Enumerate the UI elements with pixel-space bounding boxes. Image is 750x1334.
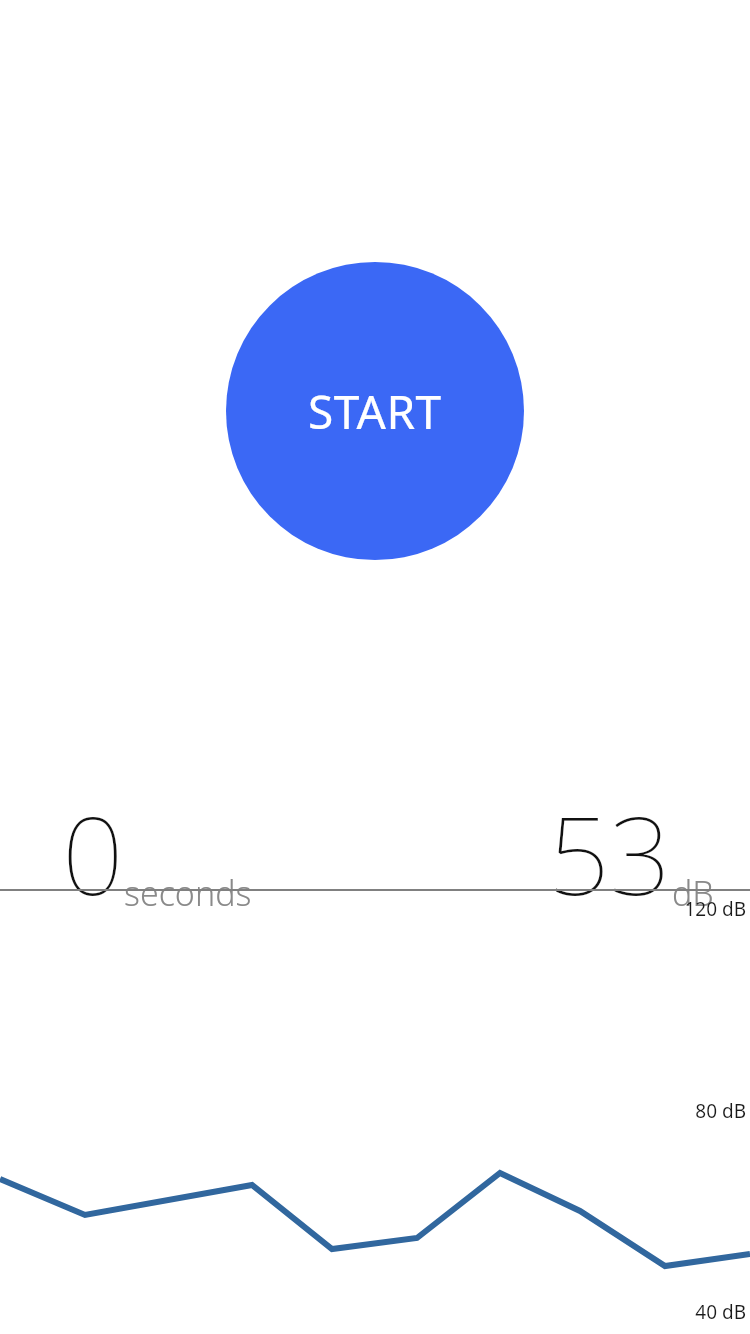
staticText: START [308, 380, 442, 443]
staticText: 120 dB [684, 896, 746, 922]
staticText: 80 dB [695, 1098, 746, 1124]
staticText: dB [672, 870, 714, 916]
staticText: 40 dB [695, 1299, 746, 1325]
staticText: seconds [124, 870, 252, 916]
staticText: 0 [62, 780, 124, 927]
staticText: 53 [548, 780, 672, 927]
button[interactable]: START [226, 262, 524, 560]
